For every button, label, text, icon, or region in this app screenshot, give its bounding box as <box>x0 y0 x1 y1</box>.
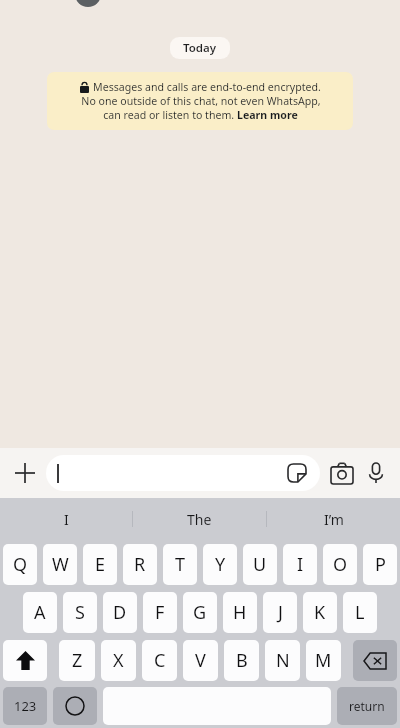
staticText: W <box>52 552 69 577</box>
staticText: D <box>113 600 127 625</box>
button[interactable]: Camera <box>326 457 358 489</box>
staticText: F <box>155 600 165 625</box>
button[interactable]: M <box>306 640 341 681</box>
button[interactable]: return <box>337 687 397 725</box>
button[interactable]: L <box>343 592 377 633</box>
staticText: O <box>333 552 348 577</box>
button[interactable]: P <box>363 544 397 585</box>
button[interactable]: I <box>283 544 317 585</box>
button[interactable]: Today <box>170 37 230 59</box>
staticText: P <box>375 552 386 577</box>
staticText: M <box>315 648 332 673</box>
staticText: S <box>75 600 85 625</box>
button[interactable]: T <box>163 544 197 585</box>
staticText: A <box>34 600 46 625</box>
button[interactable]: B <box>224 640 259 681</box>
staticText: R <box>134 552 146 577</box>
staticText: return <box>349 698 385 714</box>
button[interactable]: A <box>23 592 57 633</box>
button[interactable]: K <box>303 592 337 633</box>
button[interactable]: The <box>133 498 266 540</box>
button[interactable]: I <box>0 498 132 540</box>
button[interactable]: F <box>143 592 177 633</box>
staticText: V <box>195 648 206 673</box>
staticText: C <box>154 648 166 673</box>
staticText: I’m <box>324 510 344 529</box>
staticText: T <box>175 552 186 577</box>
button[interactable]: V <box>183 640 218 681</box>
button[interactable]: Voice message <box>360 457 392 489</box>
button[interactable]: X <box>101 640 136 681</box>
button[interactable]: Attach <box>8 456 42 490</box>
staticText: Today <box>183 40 217 56</box>
staticText: L <box>355 600 365 625</box>
button[interactable]: C <box>142 640 177 681</box>
staticText: X <box>113 648 124 673</box>
staticText: B <box>236 648 248 673</box>
button[interactable]: N <box>265 640 300 681</box>
button[interactable]: Stickers <box>46 455 320 491</box>
staticText: N <box>276 648 290 673</box>
button[interactable]: Z <box>59 640 95 681</box>
button[interactable]: Backspace <box>353 640 397 681</box>
button[interactable]: Shift <box>3 640 47 681</box>
button[interactable]: O <box>323 544 357 585</box>
button[interactable]: H <box>223 592 257 633</box>
staticText: Y <box>215 552 226 577</box>
button[interactable]: G <box>183 592 217 633</box>
staticText: E <box>95 552 106 577</box>
button[interactable]: D <box>103 592 137 633</box>
button[interactable]: I’m <box>267 498 400 540</box>
button[interactable]: Stickers <box>284 460 310 486</box>
button[interactable]: J <box>263 592 297 633</box>
button[interactable]: Emoji <box>53 687 97 725</box>
button[interactable]: Y <box>203 544 237 585</box>
button[interactable]: E <box>83 544 117 585</box>
staticText: No one outside of this chat, not even Wh… <box>81 94 321 108</box>
staticText: can read or listen to them. Learn more <box>103 108 298 122</box>
staticText: The <box>187 510 212 529</box>
staticText: Messages and calls are end-to-end encryp… <box>93 80 321 94</box>
staticText: Q <box>13 552 28 577</box>
button[interactable]: R <box>123 544 157 585</box>
staticText: I <box>64 510 69 529</box>
button[interactable]: Q <box>3 544 37 585</box>
staticText: U <box>253 552 267 577</box>
staticText: Z <box>72 648 83 673</box>
button[interactable]: W <box>43 544 77 585</box>
staticText: K <box>314 600 326 625</box>
staticText: I <box>297 552 304 577</box>
staticText: G <box>193 600 207 625</box>
staticText: 123 <box>14 697 37 715</box>
staticText: H <box>233 600 247 625</box>
button[interactable]: S <box>63 592 97 633</box>
button[interactable]: Messages and calls are end-to-end encryp… <box>47 72 353 130</box>
staticText: J <box>278 600 283 625</box>
button[interactable]: 123 <box>3 687 47 725</box>
button[interactable]: U <box>243 544 277 585</box>
